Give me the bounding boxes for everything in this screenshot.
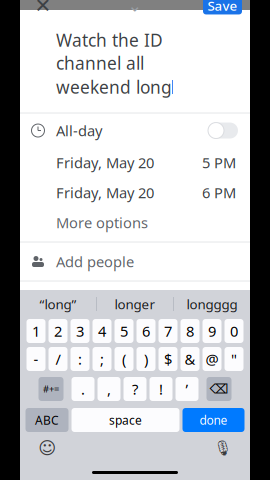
staticText: Add video conferencing xyxy=(56,287,218,306)
button[interactable]: . xyxy=(71,377,94,401)
button[interactable]: Add video conferencing xyxy=(20,281,250,311)
staticText: & xyxy=(184,349,195,369)
staticText: Save xyxy=(207,0,237,14)
button[interactable]: 8 xyxy=(180,319,199,343)
staticText: ✕ xyxy=(34,0,51,17)
staticText: 7 xyxy=(164,321,172,341)
staticText: ) xyxy=(144,349,148,369)
staticText: 4 xyxy=(98,321,106,341)
button[interactable]: Friday, May 20 xyxy=(20,177,250,207)
button[interactable]: Emoji xyxy=(34,437,60,459)
button[interactable]: Close xyxy=(28,0,58,20)
button[interactable]: done xyxy=(182,408,244,432)
button[interactable]: / xyxy=(48,347,67,371)
staticText: 🎙 xyxy=(213,440,232,456)
button[interactable]: 7 xyxy=(158,319,177,343)
button[interactable]: Dictate xyxy=(210,437,236,459)
button[interactable]: 9 xyxy=(202,319,221,343)
button[interactable]: ! xyxy=(149,377,172,401)
button[interactable]: ? xyxy=(123,377,146,401)
staticText: ABC xyxy=(35,412,59,428)
button[interactable]: space xyxy=(71,408,179,432)
button[interactable]: 1 xyxy=(26,319,45,343)
button[interactable]: ’ xyxy=(175,377,198,401)
staticText: Friday, May 20 xyxy=(56,153,154,172)
button[interactable]: Save xyxy=(203,0,242,14)
button[interactable]: More options xyxy=(20,207,250,237)
button[interactable]: 6 xyxy=(136,319,155,343)
button[interactable]: Delete xyxy=(206,377,231,401)
staticText: Watch the ID channel all xyxy=(56,28,163,74)
button[interactable]: ) xyxy=(136,347,155,371)
button[interactable]: & xyxy=(180,347,199,371)
button[interactable]: longer xyxy=(97,290,173,318)
button[interactable]: 4 xyxy=(92,319,111,343)
staticText: done xyxy=(199,412,227,428)
staticText: , xyxy=(107,379,111,399)
staticText: - xyxy=(33,349,38,369)
staticText: ? xyxy=(132,379,138,399)
staticText: ’ xyxy=(185,379,188,399)
staticText: Add people xyxy=(56,252,134,271)
staticText: ( xyxy=(122,349,126,369)
staticText: ☺ xyxy=(38,438,56,458)
button[interactable]: 3 xyxy=(70,319,89,343)
staticText: @ xyxy=(205,349,218,369)
staticText: 5 xyxy=(120,321,128,341)
staticText: More options xyxy=(56,213,148,232)
staticText: 1 xyxy=(32,321,40,341)
button[interactable]: “long” xyxy=(20,290,96,318)
staticText: longggg xyxy=(186,295,237,313)
button[interactable]: @ xyxy=(202,347,221,371)
button[interactable]: , xyxy=(97,377,120,401)
button[interactable]: " xyxy=(224,347,243,371)
button[interactable]: Collapse xyxy=(122,0,148,15)
button[interactable]: : xyxy=(70,347,89,371)
button[interactable]: - xyxy=(26,347,45,371)
staticText: / xyxy=(55,349,60,369)
staticText: : xyxy=(78,349,82,369)
button[interactable]: Friday, May 20 xyxy=(20,147,250,177)
button[interactable]: ( xyxy=(114,347,133,371)
staticText: 8 xyxy=(186,321,194,341)
button[interactable]: Add people xyxy=(20,242,250,280)
button[interactable]: 0 xyxy=(224,319,243,343)
button[interactable]: 2 xyxy=(48,319,67,343)
button[interactable]: $ xyxy=(158,347,177,371)
staticText: $ xyxy=(164,349,172,369)
staticText: ; xyxy=(100,349,104,369)
staticText: 5 PM xyxy=(202,153,236,172)
staticText: #+= xyxy=(43,383,59,395)
button[interactable]: All-day toggle xyxy=(206,117,240,143)
staticText: 6 PM xyxy=(202,183,236,202)
staticText: “long” xyxy=(39,295,76,313)
button[interactable]: ; xyxy=(92,347,111,371)
staticText: All-day xyxy=(56,121,102,140)
staticText: space xyxy=(109,412,142,428)
button[interactable]: longggg xyxy=(174,290,250,318)
staticText: " xyxy=(231,349,237,369)
button[interactable]: #+= xyxy=(38,377,63,401)
staticText: . xyxy=(81,379,85,399)
staticText: longer xyxy=(114,295,155,313)
button[interactable]: 5 xyxy=(114,319,133,343)
staticText: 6 xyxy=(142,321,150,341)
button[interactable]: ABC xyxy=(25,408,68,432)
staticText: 2 xyxy=(54,321,62,341)
staticText: 3 xyxy=(76,321,84,341)
staticText: 9 xyxy=(208,321,216,341)
staticText: 0 xyxy=(230,321,238,341)
staticText: Friday, May 20 xyxy=(56,183,154,202)
staticText: ⌫ xyxy=(209,381,228,396)
staticText: ! xyxy=(159,379,163,399)
staticText: ⌄ xyxy=(127,0,142,15)
staticText: weekend long xyxy=(56,75,172,98)
